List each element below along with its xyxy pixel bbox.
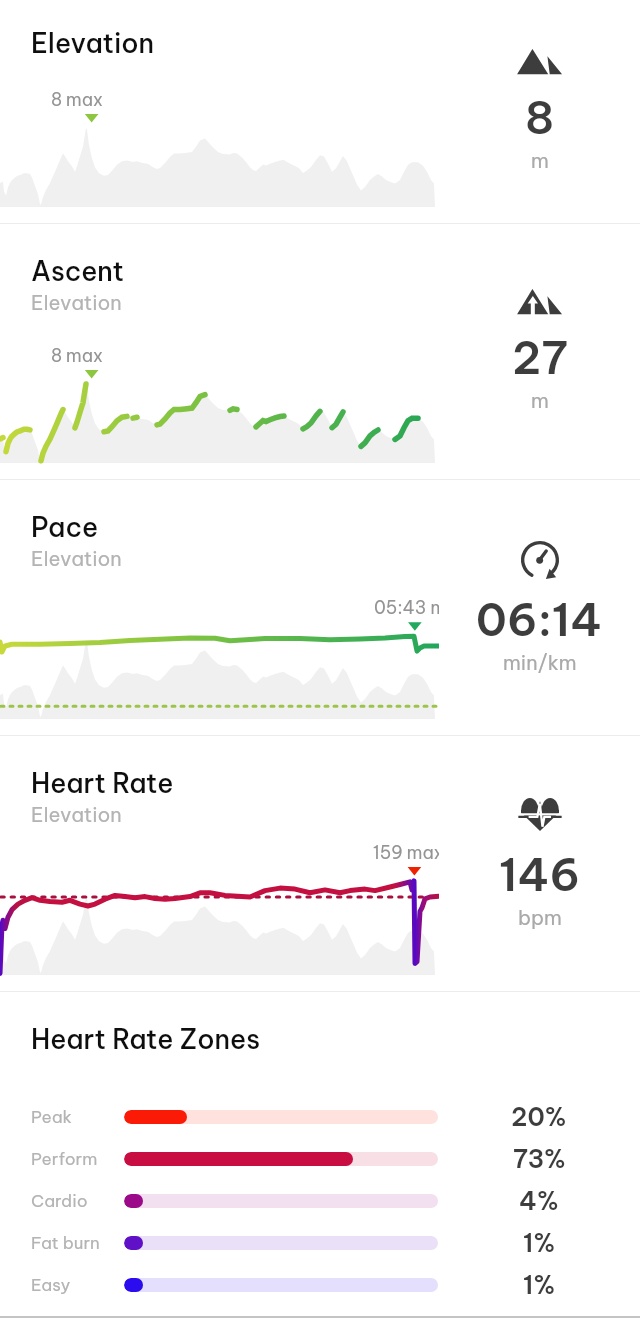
staticText: 05:43 min/km <box>374 596 439 618</box>
staticText: Cardio <box>31 1190 124 1212</box>
button[interactable]: Heart rate details <box>0 736 640 991</box>
staticText: 1% <box>523 1227 555 1259</box>
staticText: 73% <box>513 1143 566 1175</box>
staticText: Pace <box>31 510 99 544</box>
staticText: Perform <box>31 1148 124 1170</box>
staticText: 8 max <box>51 88 103 110</box>
staticText: 20% <box>511 1101 567 1133</box>
staticText: Elevation <box>31 546 122 571</box>
staticText: min/km <box>503 650 577 675</box>
staticText: 146 <box>499 846 581 902</box>
button[interactable]: Perform <box>0 1138 640 1180</box>
staticText: Heart Rate Zones <box>31 1022 261 1056</box>
staticText: Peak <box>31 1106 124 1128</box>
button[interactable]: Cardio <box>0 1180 640 1222</box>
staticText: 8 <box>525 89 555 145</box>
staticText: m <box>531 388 549 413</box>
button[interactable]: Ascent details <box>0 224 640 479</box>
staticText: Elevation <box>31 26 155 60</box>
staticText: Elevation <box>31 290 122 315</box>
staticText: 159 max <box>373 841 439 863</box>
staticText: 06:14 <box>476 591 603 647</box>
staticText: Fat burn <box>31 1232 124 1254</box>
staticText: 1% <box>523 1269 555 1301</box>
button[interactable]: Easy <box>0 1264 640 1306</box>
button[interactable]: Peak <box>0 1096 640 1138</box>
staticText: Elevation <box>31 802 122 827</box>
staticText: Ascent <box>31 254 125 288</box>
staticText: m <box>531 148 549 173</box>
button[interactable]: Pace details <box>0 480 640 735</box>
staticText: Heart Rate <box>31 766 174 800</box>
button[interactable]: Elevation details <box>0 0 640 223</box>
staticText: Easy <box>31 1274 124 1296</box>
staticText: 8 max <box>51 344 103 366</box>
button[interactable]: Fat burn <box>0 1222 640 1264</box>
staticText: bpm <box>518 905 562 930</box>
staticText: 4% <box>519 1185 559 1217</box>
staticText: 27 <box>512 329 568 385</box>
